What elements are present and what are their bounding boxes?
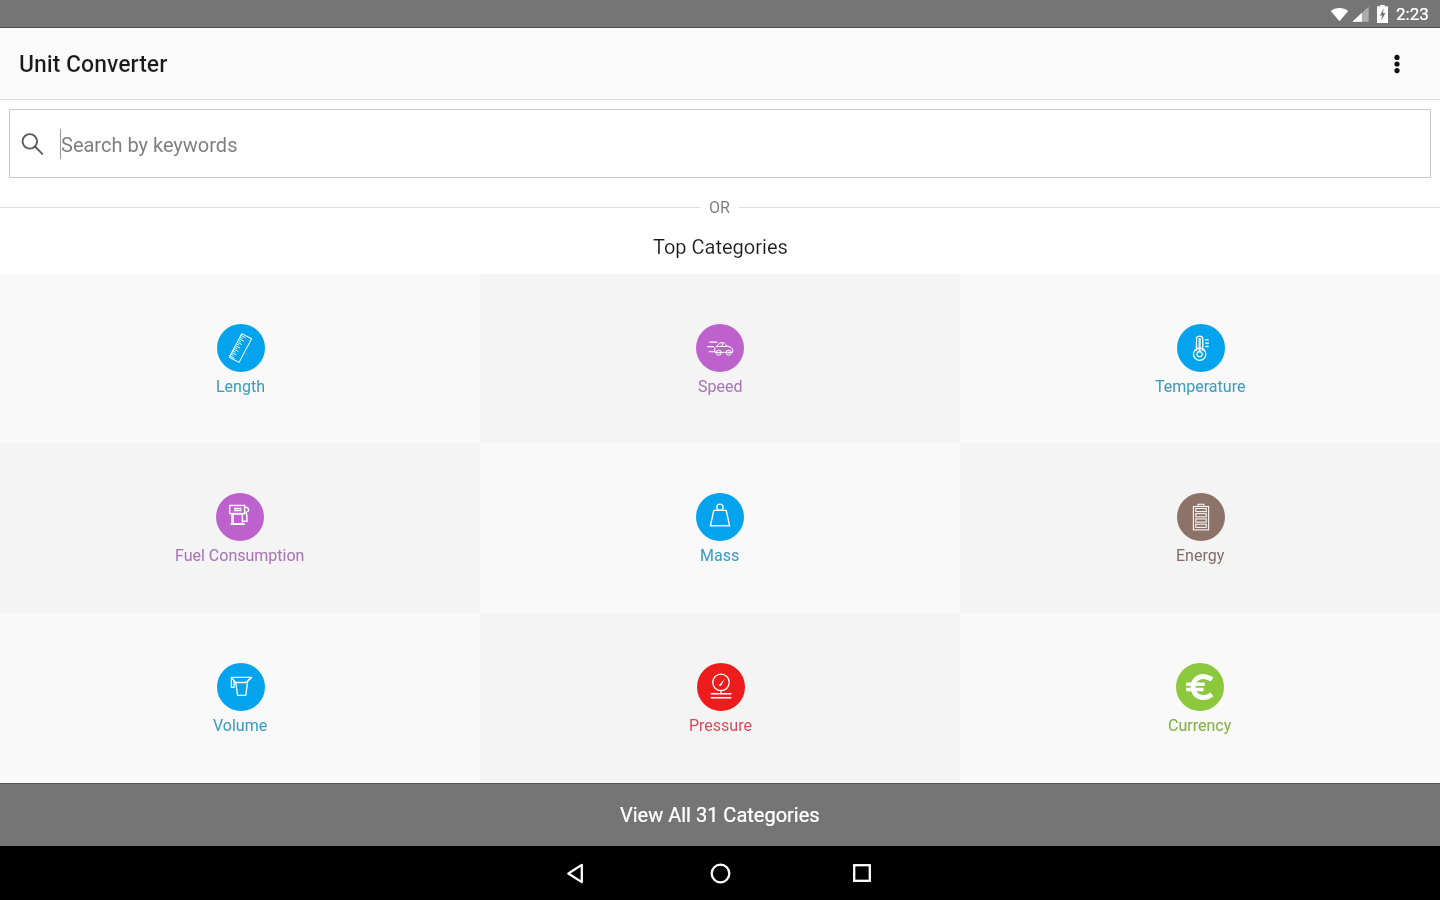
button[interactable]: Length (0, 274, 480, 443)
staticText: Length (216, 377, 265, 396)
button[interactable]: Mass (480, 443, 960, 613)
staticText: 2:23 (1396, 4, 1429, 24)
staticText: Temperature (1155, 377, 1246, 396)
button[interactable]: View All 31 Categories (0, 783, 1440, 846)
staticText: Speed (698, 377, 743, 396)
staticText: Fuel Consumption (175, 546, 305, 565)
button[interactable]: Recents (838, 849, 886, 897)
staticText: Energy (1176, 546, 1225, 565)
button[interactable]: Search by keywords (9, 109, 1431, 178)
staticText: Mass (700, 546, 740, 565)
button[interactable]: Temperature (960, 274, 1440, 443)
staticText: Top Categories (653, 235, 788, 258)
staticText: Volume (213, 716, 268, 735)
button[interactable]: Back (551, 849, 599, 897)
staticText: Unit Converter (19, 51, 168, 78)
staticText: Search by keywords (61, 133, 238, 156)
staticText: View All 31 Categories (620, 803, 820, 826)
button[interactable]: Speed (480, 274, 960, 443)
button[interactable]: Energy (960, 443, 1440, 613)
button[interactable]: Pressure (480, 613, 960, 783)
button[interactable]: Currency (960, 613, 1440, 783)
button[interactable]: Fuel Consumption (0, 443, 480, 613)
button[interactable]: Home (696, 849, 744, 897)
button[interactable]: More options (1373, 40, 1421, 88)
staticText: OR (709, 198, 730, 217)
staticText: Pressure (689, 716, 752, 735)
button[interactable]: Volume (0, 613, 480, 783)
staticText: Currency (1168, 716, 1232, 735)
